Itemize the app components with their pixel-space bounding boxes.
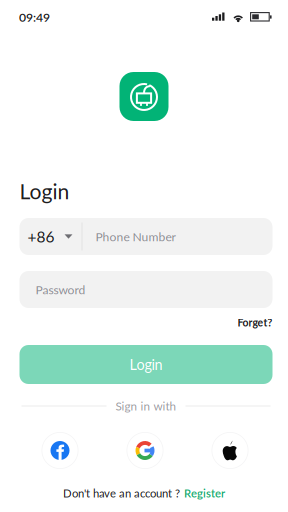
button[interactable]: Sign in with Google <box>126 432 163 469</box>
staticText: Login <box>129 356 162 373</box>
staticText: Register <box>184 486 225 500</box>
staticText: +86 <box>27 227 54 246</box>
staticText: Phone Number <box>95 229 175 244</box>
staticText: Don't have an account ? <box>63 486 180 500</box>
staticText: Forget? <box>237 316 272 329</box>
button[interactable]: +86 <box>19 218 81 255</box>
staticText: Sign in with <box>115 399 176 413</box>
button[interactable]: Register <box>184 486 225 500</box>
staticText: 09:49 <box>19 10 50 24</box>
staticText: Login <box>19 178 69 204</box>
staticText: Password <box>35 282 85 297</box>
button[interactable]: Sign in with Apple <box>211 432 248 469</box>
button[interactable]: Sign in with Facebook <box>41 432 78 469</box>
button[interactable]: Login <box>19 345 272 384</box>
button[interactable]: Forget? <box>237 316 272 329</box>
